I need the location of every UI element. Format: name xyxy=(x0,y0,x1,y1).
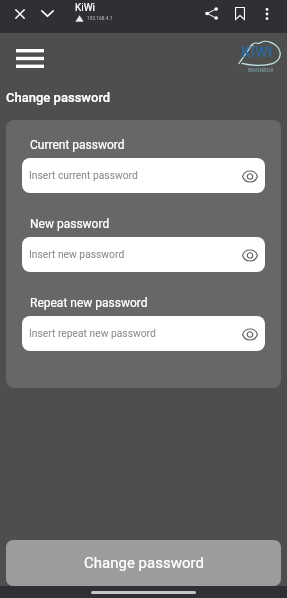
button[interactable]: Insert repeat new password xyxy=(22,316,265,351)
staticText: Change password xyxy=(6,90,111,105)
staticText: Insert new password xyxy=(29,248,125,260)
button[interactable]: Share xyxy=(198,0,225,27)
staticText: KiWi xyxy=(75,2,96,14)
button[interactable]: Close xyxy=(5,0,34,27)
staticText: BRAINBOX xyxy=(248,67,274,73)
button[interactable]: Menu xyxy=(8,42,52,75)
button[interactable]: Show password xyxy=(238,243,262,267)
button[interactable]: Change password xyxy=(6,540,281,586)
button[interactable]: More options xyxy=(254,0,280,27)
staticText: Change password xyxy=(84,554,204,572)
button[interactable]: Show password xyxy=(238,164,262,188)
staticText: 192.168.4.1 xyxy=(87,16,113,22)
button[interactable]: Expand xyxy=(34,0,61,27)
button[interactable]: Bookmark xyxy=(226,0,253,27)
staticText: Insert repeat new password xyxy=(29,327,156,339)
staticText: KIWI xyxy=(241,43,273,61)
button[interactable]: Insert current password xyxy=(22,158,265,193)
button[interactable]: Insert new password xyxy=(22,237,265,272)
staticText: Repeat new password xyxy=(30,296,148,310)
staticText: Insert current password xyxy=(29,169,138,181)
staticText: New password xyxy=(30,217,110,231)
staticText: Current password xyxy=(30,138,125,152)
button[interactable]: Show password xyxy=(238,322,262,346)
